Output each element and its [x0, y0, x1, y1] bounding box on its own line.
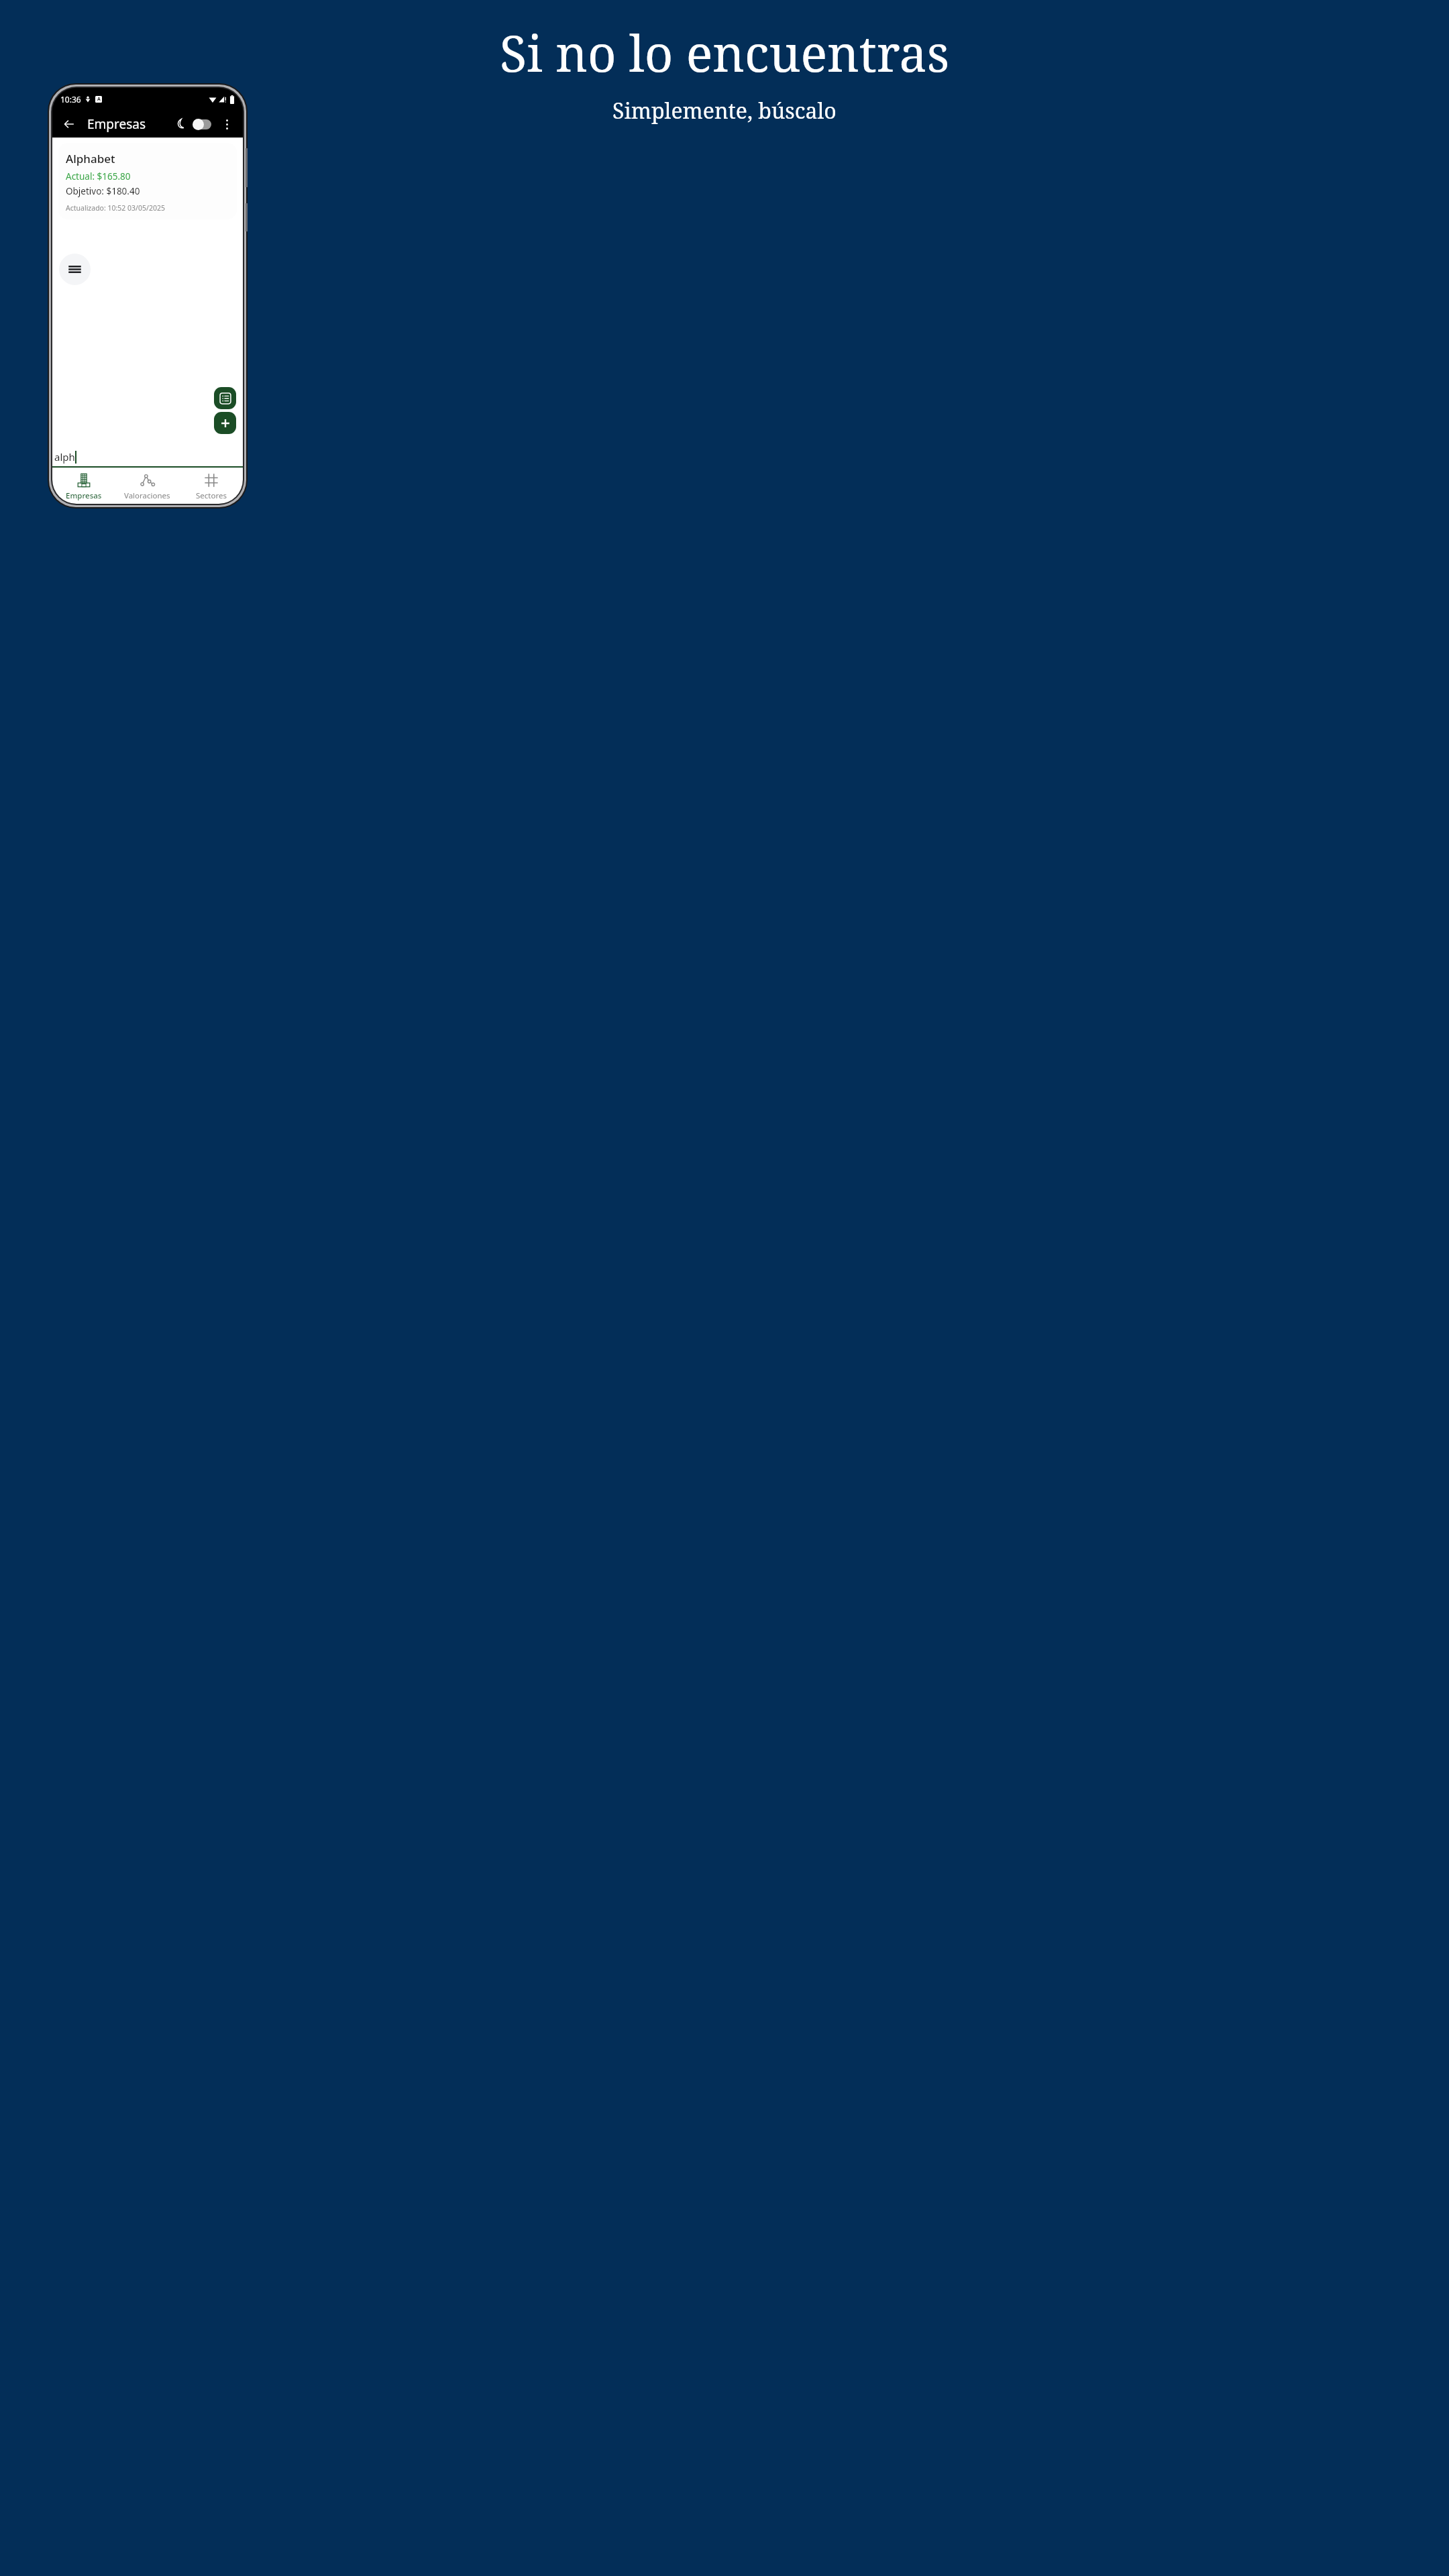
- button[interactable]: Atrás: [59, 114, 79, 134]
- staticText: Sectores: [196, 490, 227, 501]
- button[interactable]: Lista: [214, 387, 236, 409]
- button[interactable]: Alphabet: [58, 143, 237, 219]
- button[interactable]: Empresas: [52, 469, 115, 504]
- button[interactable]: Cambiar tema: [192, 115, 215, 133]
- button[interactable]: Añadir: [214, 412, 236, 434]
- staticText: Alphabet: [66, 151, 115, 166]
- button[interactable]: Modo oscuro: [172, 115, 191, 133]
- button[interactable]: Más opciones: [217, 115, 236, 133]
- staticText: Actual: $165.80: [66, 170, 131, 182]
- staticText: alph: [54, 450, 75, 464]
- button[interactable]: alph: [52, 447, 243, 466]
- staticText: Objetivo: $180.40: [66, 185, 140, 197]
- button[interactable]: Sectores: [179, 469, 243, 504]
- staticText: Simplemente, búscalo: [612, 96, 837, 125]
- button[interactable]: Menu: [59, 254, 91, 285]
- staticText: Empresas: [66, 490, 102, 501]
- staticText: Empresas: [87, 115, 146, 133]
- staticText: Valoraciones: [124, 490, 170, 501]
- staticText: Actualizado: 10:52 03/05/2025: [66, 203, 165, 213]
- staticText: Si no lo encuentras: [500, 19, 950, 87]
- staticText: A: [97, 96, 101, 103]
- button[interactable]: Valoraciones: [115, 469, 179, 504]
- staticText: 10:36: [60, 94, 81, 105]
